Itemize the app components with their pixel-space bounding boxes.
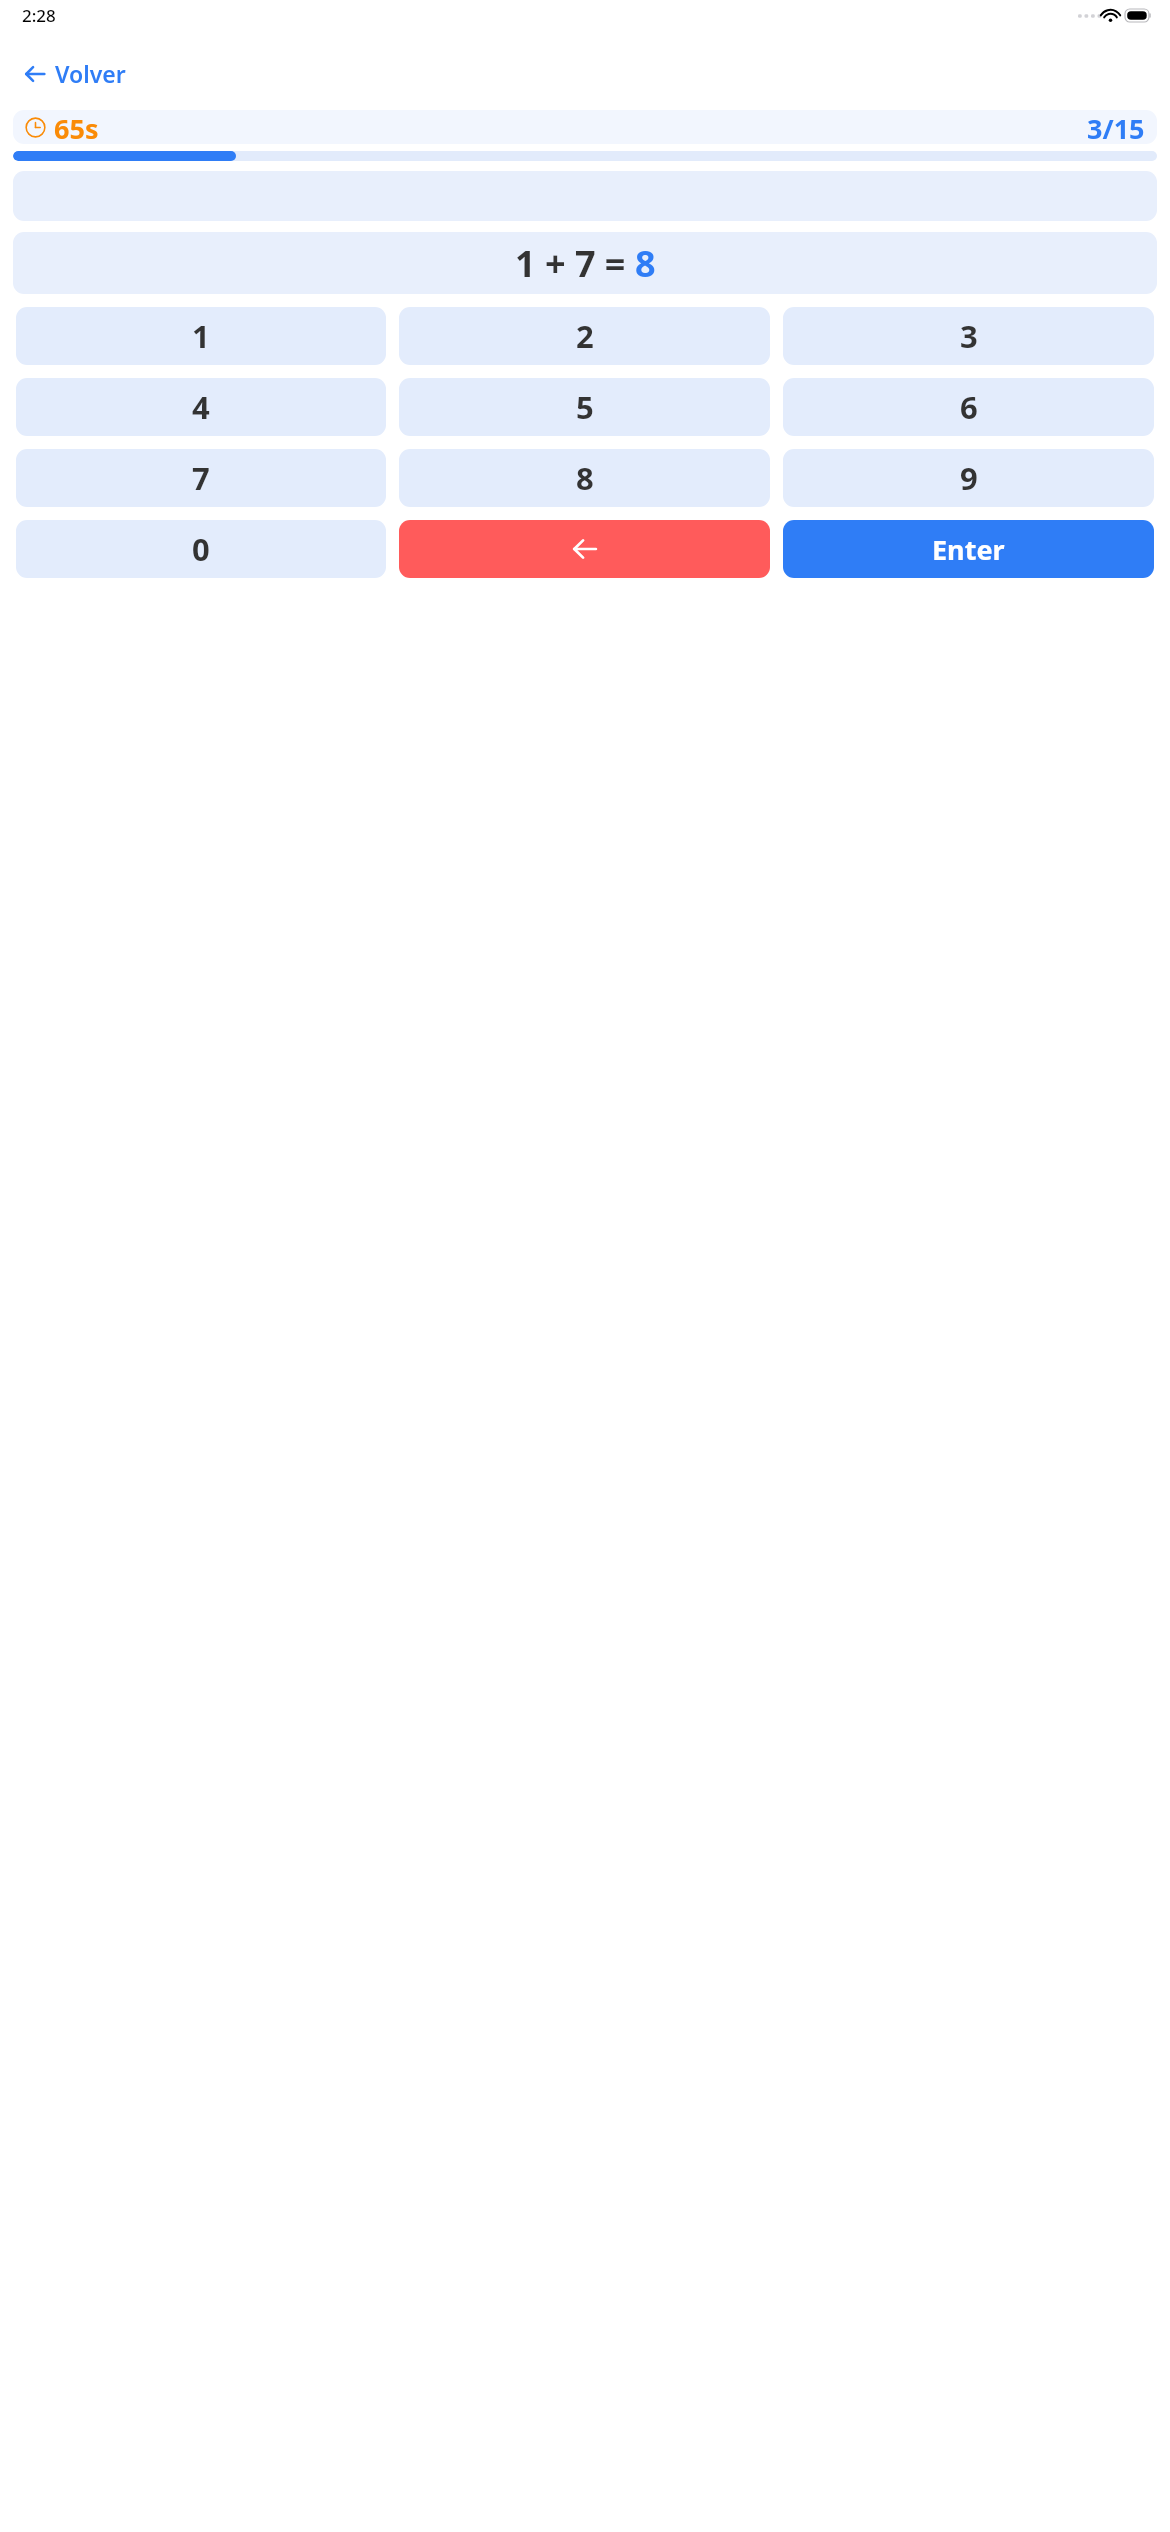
staticText: 2 [576, 315, 594, 357]
button[interactable]: 4 [16, 378, 386, 436]
staticText: 2:28 [22, 4, 56, 27]
staticText: 1 + 7 = [515, 239, 635, 288]
staticText: 1 [192, 315, 210, 357]
staticText: 3/15 [1087, 110, 1145, 144]
staticText: 9 [960, 457, 978, 499]
staticText: 0 [192, 528, 210, 570]
staticText: 3 [960, 315, 978, 357]
staticText: 8 [635, 239, 656, 288]
button[interactable]: 7 [16, 449, 386, 507]
staticText: Volver [55, 58, 126, 89]
button[interactable]: 6 [783, 378, 1154, 436]
button[interactable]: Back [18, 52, 131, 95]
button[interactable]: 1 [16, 307, 386, 365]
other: Back [23, 62, 47, 86]
button[interactable]: 9 [783, 449, 1154, 507]
staticText: 65s [54, 110, 99, 144]
staticText: 8 [576, 457, 594, 499]
staticText: 5 [576, 386, 594, 428]
button[interactable]: 8 [399, 449, 770, 507]
staticText: Enter [932, 531, 1005, 568]
staticText: 7 [192, 457, 210, 499]
button[interactable]: 2 [399, 307, 770, 365]
button[interactable]: Enter [783, 520, 1154, 578]
button[interactable]: 3 [783, 307, 1154, 365]
button[interactable]: Backspace [399, 520, 770, 578]
button[interactable]: 0 [16, 520, 386, 578]
staticText: 4 [192, 386, 210, 428]
button[interactable]: 5 [399, 378, 770, 436]
staticText: 6 [960, 386, 978, 428]
